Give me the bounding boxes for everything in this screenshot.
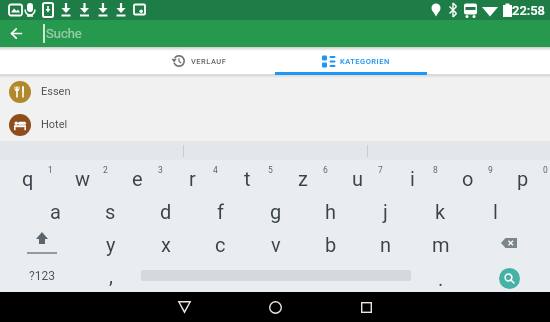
button[interactable]: j: [358, 193, 413, 226]
staticText: 5: [268, 165, 273, 175]
button[interactable]: r: [165, 160, 220, 193]
button[interactable]: y: [83, 226, 138, 259]
button[interactable]: [468, 259, 550, 292]
staticText: VERLAUF: [191, 57, 227, 66]
button[interactable]: Hotel: [0, 108, 550, 141]
button[interactable]: t: [220, 160, 275, 193]
staticText: 22:58: [512, 3, 546, 18]
button[interactable]: e: [110, 160, 165, 193]
staticText: 3: [158, 165, 163, 175]
staticText: n: [380, 233, 392, 256]
button[interactable]: a: [28, 193, 83, 226]
staticText: h: [325, 200, 337, 223]
button[interactable]: q: [0, 160, 55, 193]
button[interactable]: p: [495, 160, 550, 193]
staticText: q: [22, 167, 34, 190]
staticText: 0: [543, 165, 548, 175]
staticText: p: [517, 167, 529, 190]
button[interactable]: [6, 23, 27, 44]
button[interactable]: n: [358, 226, 413, 259]
staticText: a: [50, 200, 61, 223]
staticText: m: [432, 233, 450, 256]
button[interactable]: .: [413, 259, 468, 292]
staticText: f: [217, 200, 224, 223]
staticText: x: [161, 233, 171, 256]
staticText: 7: [378, 165, 383, 175]
button[interactable]: [245, 292, 305, 322]
staticText: i: [410, 167, 415, 190]
staticText: j: [383, 200, 388, 223]
staticText: ,: [109, 264, 113, 287]
button[interactable]: v: [248, 226, 303, 259]
staticText: s: [105, 200, 116, 223]
button[interactable]: i: [385, 160, 440, 193]
staticText: .: [438, 267, 444, 290]
staticText: l: [493, 200, 498, 223]
button[interactable]: [138, 259, 413, 292]
button[interactable]: c: [193, 226, 248, 259]
staticText: d: [160, 200, 172, 223]
staticText: Hotel: [41, 118, 68, 131]
button[interactable]: d: [138, 193, 193, 226]
staticText: g: [270, 200, 282, 223]
button[interactable]: Essen: [0, 75, 550, 108]
button[interactable]: f: [193, 193, 248, 226]
staticText: k: [435, 200, 446, 223]
button[interactable]: KATEGORIEN: [275, 47, 427, 75]
button[interactable]: [468, 226, 550, 259]
button[interactable]: VERLAUF: [123, 47, 275, 75]
staticText: t: [244, 167, 251, 190]
staticText: KATEGORIEN: [340, 57, 390, 66]
button[interactable]: k: [413, 193, 468, 226]
staticText: b: [325, 233, 337, 256]
button[interactable]: m: [413, 226, 468, 259]
button[interactable]: s: [83, 193, 138, 226]
staticText: ?123: [29, 269, 55, 283]
button[interactable]: [154, 292, 214, 322]
staticText: r: [189, 167, 196, 190]
button[interactable]: l: [468, 193, 523, 226]
button[interactable]: b: [303, 226, 358, 259]
staticText: 2: [103, 165, 108, 175]
button[interactable]: z: [275, 160, 330, 193]
button[interactable]: [336, 292, 396, 322]
staticText: 8: [433, 165, 438, 175]
button[interactable]: ,: [83, 259, 138, 292]
staticText: Essen: [41, 85, 71, 98]
staticText: 6: [323, 165, 328, 175]
staticText: w: [75, 167, 91, 190]
button[interactable]: w: [55, 160, 110, 193]
staticText: 4: [213, 165, 218, 175]
button[interactable]: x: [138, 226, 193, 259]
button[interactable]: g: [248, 193, 303, 226]
staticText: 9: [488, 165, 493, 175]
button[interactable]: u: [330, 160, 385, 193]
button[interactable]: ?123: [0, 259, 83, 292]
button[interactable]: o: [440, 160, 495, 193]
staticText: o: [462, 167, 474, 190]
staticText: Suche: [46, 26, 82, 41]
staticText: 1: [48, 165, 53, 175]
staticText: v: [271, 233, 281, 256]
staticText: u: [352, 167, 364, 190]
staticText: z: [298, 167, 308, 190]
button[interactable]: h: [303, 193, 358, 226]
button[interactable]: [0, 226, 83, 259]
staticText: e: [132, 167, 143, 190]
staticText: y: [106, 233, 116, 256]
staticText: c: [215, 233, 226, 256]
